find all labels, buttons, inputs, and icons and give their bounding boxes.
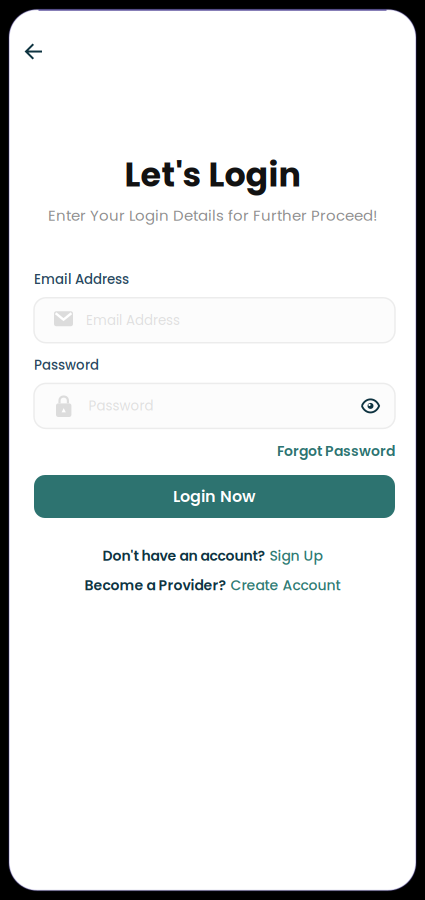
staticText: Become a Provider? (84, 576, 226, 595)
button[interactable]: Don't have an account? (102, 546, 322, 566)
staticText: Login Now (173, 485, 256, 508)
staticText: Password (34, 356, 99, 374)
staticText: Password (88, 397, 153, 415)
button[interactable]: Back (14, 31, 54, 71)
staticText: Email Address (34, 270, 129, 289)
button[interactable]: Show password (353, 389, 387, 423)
button[interactable]: Become a Provider? (84, 576, 340, 595)
staticText: Email Address (86, 311, 180, 330)
staticText: Sign Up (269, 546, 322, 566)
button[interactable]: Login Now (34, 475, 395, 518)
staticText: Enter Your Login Details for Further Pro… (48, 205, 377, 226)
staticText: Don't have an account? (102, 546, 265, 566)
button[interactable]: Forgot Password (277, 441, 395, 461)
staticText: Forgot Password (277, 441, 395, 461)
staticText: Let's Login (124, 151, 300, 198)
staticText: Create Account (230, 576, 340, 595)
